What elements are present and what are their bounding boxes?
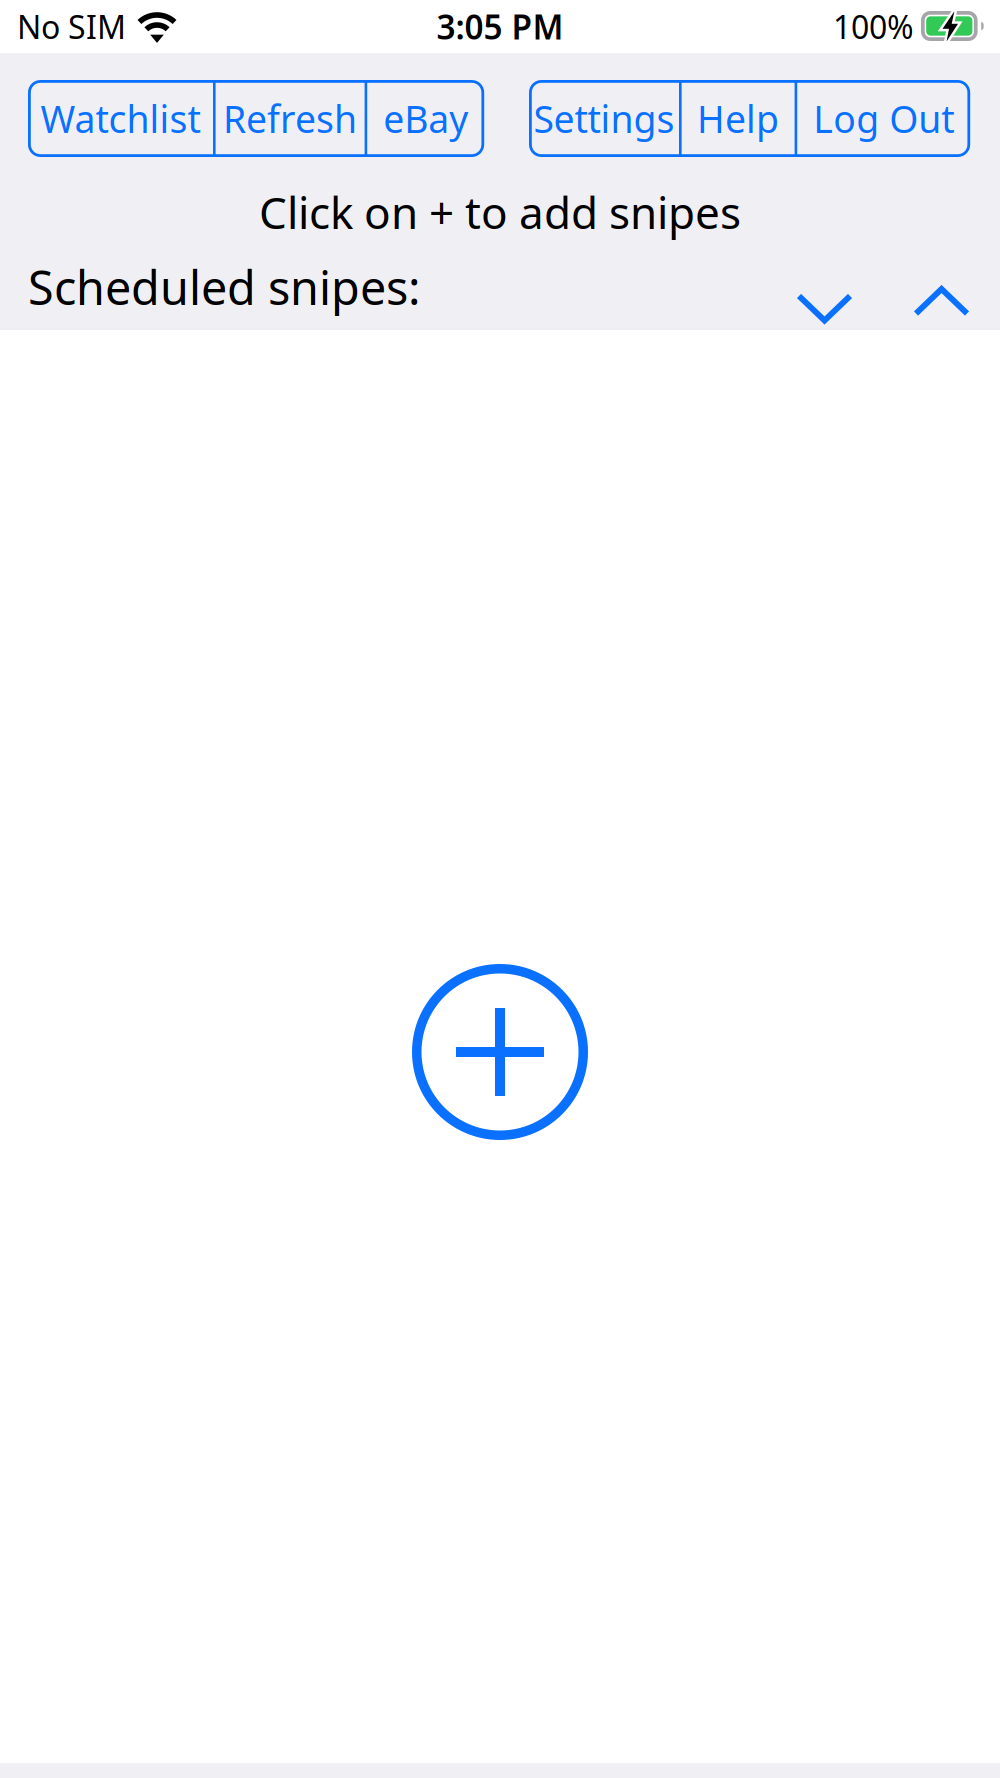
button[interactable]: Collapse scheduled snipes bbox=[793, 289, 856, 328]
button[interactable]: Settings bbox=[529, 80, 679, 157]
button[interactable]: Help bbox=[682, 80, 795, 157]
staticText: Watchlist bbox=[40, 94, 200, 143]
staticText: Help bbox=[697, 94, 779, 143]
staticText: Click on + to add snipes bbox=[259, 183, 741, 241]
button[interactable]: Expand scheduled snipes bbox=[910, 282, 973, 321]
staticText: Scheduled snipes: bbox=[28, 256, 421, 318]
button[interactable]: Watchlist bbox=[28, 80, 213, 157]
staticText: No SIM bbox=[17, 5, 126, 48]
button[interactable]: eBay bbox=[367, 80, 484, 157]
staticText: Log Out bbox=[813, 94, 954, 143]
staticText: Refresh bbox=[223, 94, 357, 143]
button[interactable]: Add snipe bbox=[412, 964, 588, 1140]
staticText: 3:05 PM bbox=[436, 4, 563, 49]
staticText: eBay bbox=[383, 94, 468, 143]
button[interactable]: Log Out bbox=[797, 80, 970, 157]
staticText: Settings bbox=[533, 94, 674, 143]
button[interactable]: Refresh bbox=[216, 80, 365, 157]
staticText: 100% bbox=[833, 5, 914, 48]
